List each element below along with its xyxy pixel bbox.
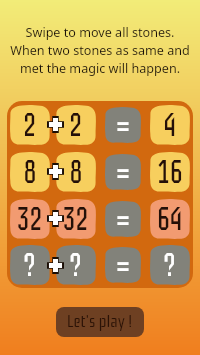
staticText: 2 [23, 106, 36, 145]
button[interactable]: 8 [10, 152, 50, 192]
button[interactable]: 8 [56, 152, 96, 192]
staticText: ? [69, 246, 82, 285]
staticText: = [116, 154, 129, 190]
button[interactable]: 4 [150, 105, 190, 145]
staticText: = [116, 247, 129, 283]
other: plus [47, 257, 64, 274]
staticText: 8 [69, 153, 82, 192]
button[interactable]: = [105, 154, 141, 190]
button[interactable]: = [105, 107, 141, 143]
button[interactable]: ? [10, 245, 50, 285]
button[interactable]: = [105, 247, 141, 283]
staticText: = [116, 107, 129, 143]
other: plus [47, 163, 64, 180]
button[interactable]: 2 [56, 105, 96, 145]
button[interactable]: 16 [150, 152, 190, 192]
button[interactable]: = [105, 201, 141, 237]
button[interactable]: 64 [150, 199, 190, 239]
staticText: 2 [69, 106, 82, 145]
staticText: 64 [157, 200, 183, 239]
button[interactable]: 32 [10, 199, 50, 239]
button[interactable]: ? [56, 245, 96, 285]
button[interactable]: 2 [10, 105, 50, 145]
staticText: Swipe to move all stones. When two stone… [0, 24, 200, 77]
staticText: 32 [17, 200, 43, 239]
staticText: = [116, 201, 129, 237]
staticText: Let's play ! [67, 312, 133, 332]
staticText: ? [163, 246, 176, 285]
other: plus [47, 210, 64, 227]
staticText: 4 [163, 106, 176, 145]
staticText: 8 [23, 153, 36, 192]
button[interactable]: ? [150, 245, 190, 285]
staticText: 32 [63, 200, 89, 239]
button[interactable]: 32 [56, 199, 96, 239]
staticText: 16 [157, 153, 183, 192]
other: plus [47, 116, 64, 133]
button[interactable]: Let's play ! [56, 307, 144, 337]
staticText: ? [23, 246, 36, 285]
